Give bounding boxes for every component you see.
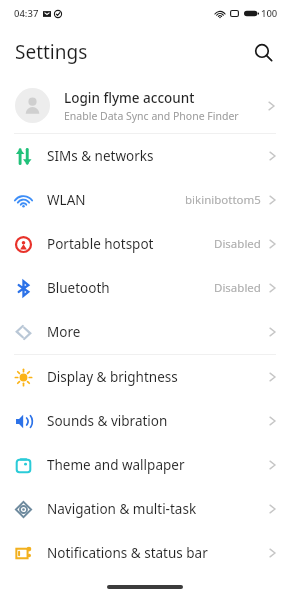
button[interactable]: More [0,310,290,354]
staticText: Notifications & status bar [47,544,208,562]
button[interactable]: Search [246,35,280,69]
staticText: Navigation & multi-task [47,500,197,518]
button[interactable]: WLAN [0,178,290,222]
button[interactable]: Navigation & multi-task [0,487,290,531]
staticText: SIMs & networks [47,147,154,165]
button[interactable]: Portable hotspot [0,222,290,266]
staticText: Enable Data Sync and Phone Finder [64,109,239,123]
staticText: Disabled [214,236,261,252]
staticText: Disabled [214,280,261,296]
button[interactable]: Login flyme account [0,78,290,133]
staticText: 04:37 [14,7,39,20]
staticText: WLAN [47,191,86,209]
staticText: Bluetooth [47,279,110,297]
button[interactable]: Sounds & vibration [0,399,290,443]
button[interactable]: Notifications & status bar [0,531,290,575]
staticText: Display & brightness [47,368,178,386]
staticText: Theme and wallpaper [47,456,185,474]
staticText: Portable hotspot [47,235,154,253]
staticText: More [47,323,81,341]
staticText: Sounds & vibration [47,412,168,430]
staticText: Settings [15,39,88,65]
staticText: bikinibottom5 [185,192,261,208]
button[interactable]: Display & brightness [0,355,290,399]
button[interactable]: SIMs & networks [0,134,290,178]
button[interactable]: Bluetooth [0,266,290,310]
staticText: Login flyme account [64,89,195,107]
button[interactable]: Theme and wallpaper [0,443,290,487]
staticText: 100 [261,7,278,20]
